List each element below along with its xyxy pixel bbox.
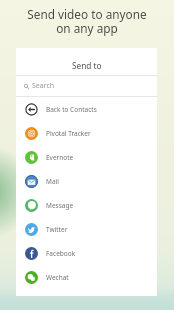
button[interactable]: Back to Contacts	[16, 97, 157, 121]
staticText: Twitter	[46, 225, 68, 234]
staticText: Wechat	[46, 273, 69, 282]
staticText: Search	[32, 81, 55, 91]
button[interactable]: Search	[16, 76, 157, 96]
staticText: Pivotal Tracker	[46, 129, 91, 138]
button[interactable]: Evernote	[16, 145, 157, 169]
staticText: Send to	[72, 60, 102, 71]
button[interactable]: Mail	[16, 169, 157, 193]
button[interactable]: Pivotal Tracker	[16, 121, 157, 145]
staticText: Message	[46, 201, 74, 210]
staticText: Facebook	[46, 249, 76, 258]
button[interactable]: Wechat	[16, 265, 157, 289]
button[interactable]: Message	[16, 193, 157, 217]
staticText: Evernote	[46, 153, 74, 162]
staticText: Send video to anyone on any app	[27, 6, 147, 36]
staticText: Mail	[46, 177, 59, 186]
button[interactable]: Twitter	[16, 217, 157, 241]
button[interactable]: Facebook	[16, 241, 157, 265]
staticText: Back to Contacts	[46, 105, 97, 114]
